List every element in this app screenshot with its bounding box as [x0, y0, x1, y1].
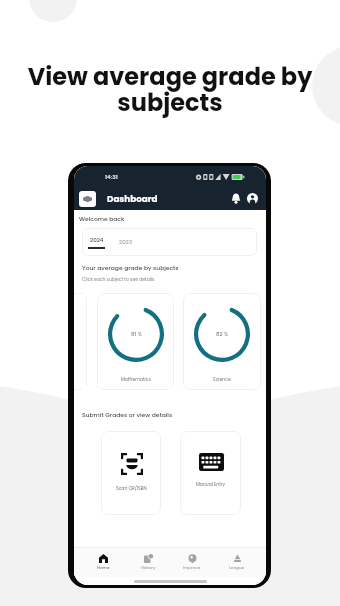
staticText: Home [97, 565, 110, 571]
button[interactable]: 81 % [97, 293, 174, 390]
staticText: League [229, 565, 245, 571]
staticText: Manual Entry [196, 481, 226, 487]
button[interactable]: Notifications [230, 192, 241, 205]
staticText: 14:31 [105, 173, 118, 181]
button[interactable]: 82 % [183, 293, 261, 390]
staticText: Welcome back [79, 215, 125, 223]
button[interactable]: Improve [172, 548, 212, 577]
staticText: 82 % [216, 330, 229, 338]
staticText: 2023 [119, 238, 133, 246]
staticText: Improve [183, 565, 201, 571]
staticText: Mathematics [121, 376, 151, 382]
staticText: Dashboard [107, 193, 158, 205]
staticText: Click each subject to see details [82, 276, 155, 282]
button[interactable]: Scan QR/ISBN [101, 431, 161, 515]
button[interactable]: Account [245, 191, 260, 206]
staticText: Submit Grades or view details [82, 411, 173, 419]
button[interactable]: Manual Entry [180, 431, 241, 515]
button[interactable]: History [128, 548, 168, 577]
button[interactable]: Home [83, 548, 123, 577]
staticText: 81 % [131, 330, 142, 338]
button[interactable] [74, 293, 87, 390]
staticText: 2024 [90, 236, 104, 244]
button[interactable]: 2023 [119, 238, 133, 246]
button[interactable]: League [217, 548, 257, 577]
staticText: Science [213, 376, 231, 382]
staticText: Your average grade by subjects [82, 264, 179, 272]
button[interactable]: Menu [79, 191, 96, 207]
staticText: Scan QR/ISBN [116, 485, 147, 491]
staticText: View average grade by subjects [14, 60, 326, 120]
staticText: History [141, 565, 156, 571]
button[interactable]: 2024 [86, 236, 107, 249]
